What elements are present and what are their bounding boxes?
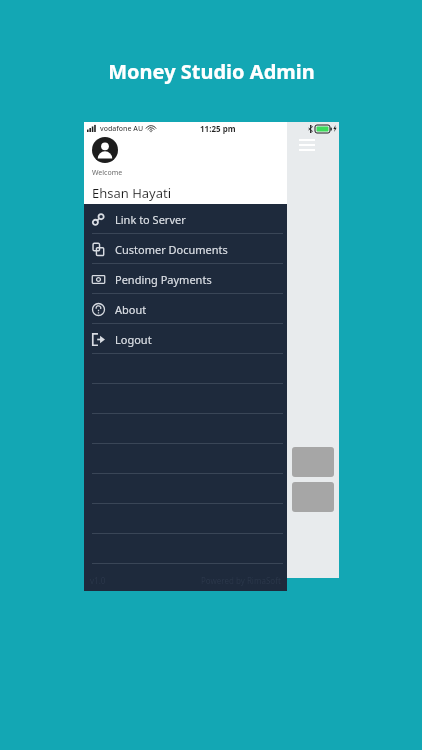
button[interactable]: Link to Server — [84, 204, 287, 234]
button[interactable]: Logout — [84, 324, 287, 354]
staticText: About — [115, 302, 147, 317]
staticText: 11:25 pm — [200, 123, 236, 134]
staticText: vodafone AU — [100, 124, 144, 134]
button[interactable]: About — [84, 294, 287, 324]
staticText: Customer Documents — [115, 242, 228, 257]
staticText: Money Studio Admin — [108, 58, 315, 85]
staticText: Logout — [115, 332, 152, 347]
staticText: Welcome — [92, 168, 123, 178]
button[interactable]: Pending Payments — [84, 264, 287, 294]
button[interactable]: Menu — [299, 139, 315, 151]
button[interactable]: Customer Documents — [84, 234, 287, 264]
staticText: Ehsan Hayati — [92, 184, 172, 202]
staticText: Powered by RimaSoft — [201, 575, 281, 586]
staticText: Link to Server — [115, 212, 186, 227]
staticText: Pending Payments — [115, 272, 212, 287]
button[interactable]: Item — [292, 447, 334, 477]
button[interactable]: Item — [292, 482, 334, 512]
staticText: v1.0 — [90, 575, 106, 586]
